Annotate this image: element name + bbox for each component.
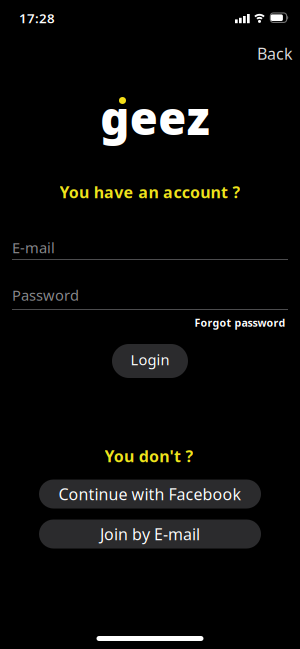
button[interactable]: Login	[112, 344, 188, 378]
button[interactable]: Continue with Facebook	[39, 479, 261, 508]
staticText: Forgot password	[194, 315, 285, 330]
staticText: Back	[257, 43, 293, 64]
staticText: You have an account ?	[59, 181, 240, 203]
staticText: E-mail	[12, 238, 55, 257]
staticText: 17:28	[19, 9, 55, 27]
staticText: Join by E-mail	[100, 523, 200, 545]
button[interactable]: Forgot password	[194, 315, 285, 330]
button[interactable]: Password	[10, 281, 290, 311]
staticText: Continue with Facebook	[58, 483, 241, 505]
button[interactable]: Back	[257, 43, 293, 64]
staticText: Login	[130, 350, 169, 369]
button[interactable]: E-mail	[10, 234, 290, 264]
staticText: geez	[100, 87, 210, 148]
staticText: You don't ?	[104, 445, 193, 467]
staticText: Password	[12, 285, 79, 305]
button[interactable]: Join by E-mail	[39, 519, 261, 548]
